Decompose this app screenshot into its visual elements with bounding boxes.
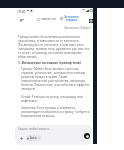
staticText: Озноб: Реакция на холод, лихорадку или и… [21,95,91,103]
staticText: Значение: Если тремор усиливается, реком… [21,106,91,118]
staticText: Тремор может быть вызван различными прич… [18,35,91,59]
button[interactable]: Add attachment [18,135,24,141]
staticText: Временно (Забыл? [18,26,91,30]
button[interactable]: новый чат [37,16,57,22]
button[interactable]: Auto [26,135,41,141]
button[interactable]: Chat history [17,16,26,25]
button[interactable]: Voice input [84,133,90,139]
staticText: Auto [30,136,37,140]
staticText: Задать любой вопрос... [18,127,52,131]
button[interactable]: Бесплатно открыто [60,15,79,22]
staticText: Бесплатно открыто [64,15,79,22]
button[interactable]: Full screen [86,16,95,25]
staticText: Тремор: Может быть вызван стрессом, стра… [21,67,91,91]
staticText: новый чат [41,17,57,21]
button[interactable]: Задать любой вопрос... [15,125,92,145]
staticText: 1. Физическое состояние (тремор тела) [18,61,81,65]
staticText: 19:20 [17,9,26,13]
